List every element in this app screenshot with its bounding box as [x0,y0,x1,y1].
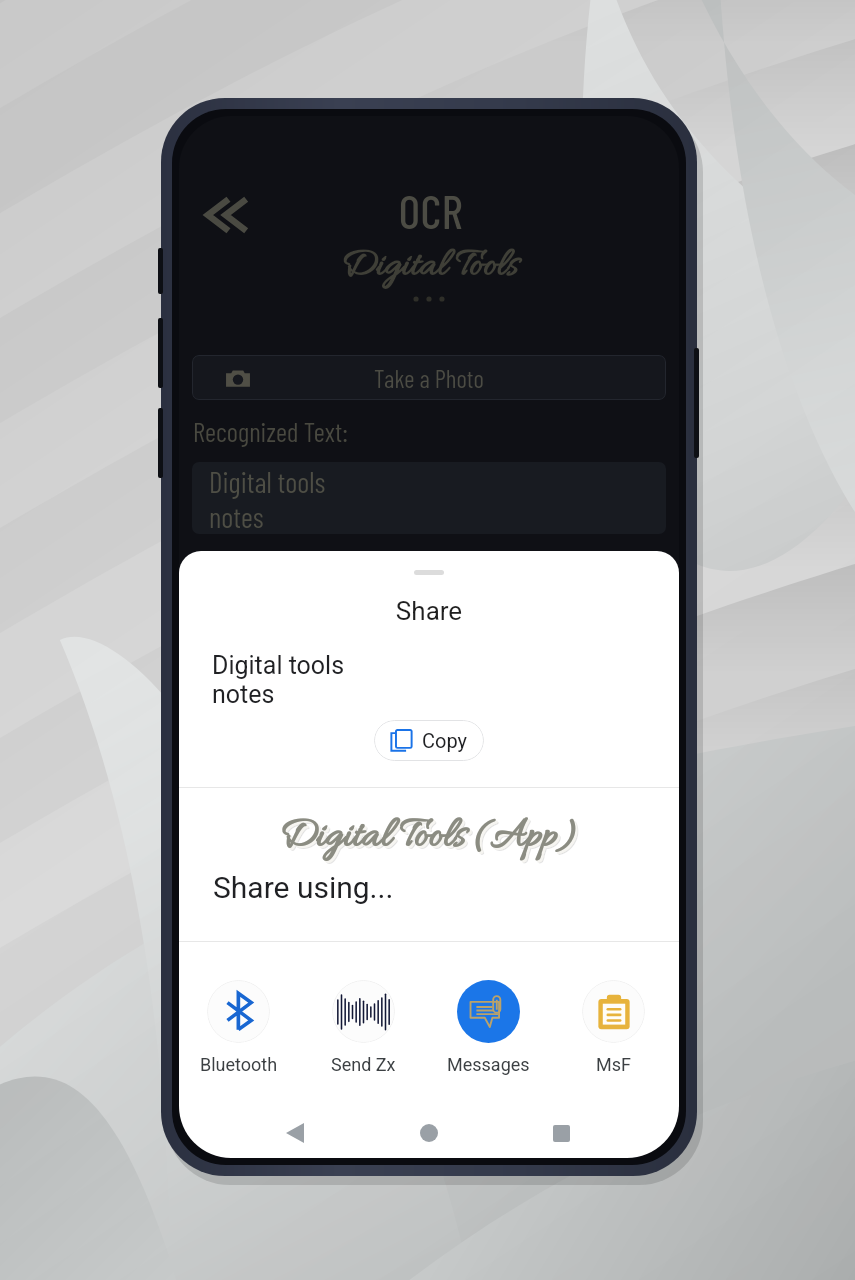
staticText: Digital Tools (App) [282,814,582,867]
button[interactable]: Messages [426,977,551,1078]
staticText: Bluetooth [200,1054,278,1075]
button[interactable]: Back [273,1111,317,1155]
button[interactable]: Bluetooth [179,977,301,1078]
button[interactable]: Send Zx [301,977,426,1078]
button[interactable]: MsF [551,977,676,1078]
staticText: Digital Tools (App) [281,813,581,866]
staticText: Digital tools [209,464,326,499]
staticText: Share [179,596,679,626]
staticText: Recognized Text: [193,415,348,447]
staticText: notes [212,680,275,709]
staticText: Take a Photo [374,363,484,393]
staticText: Share using... [213,870,394,905]
staticText: Messages [447,1054,530,1075]
staticText: Send Zx [331,1054,396,1075]
button[interactable]: Home [407,1111,451,1155]
staticText: Digital Tools (App) [279,811,579,864]
button[interactable]: Copy [374,720,484,761]
button[interactable]: Back [198,192,255,238]
staticText: Digital tools [212,651,345,680]
staticText: Copy [422,729,468,752]
staticText: Digital Tools [179,242,679,292]
staticText: MsF [596,1054,631,1075]
button[interactable]: Recent apps [539,1111,583,1155]
staticText: OCR [181,183,679,238]
button[interactable]: Take a Photo [192,355,666,400]
staticText: notes [209,499,264,534]
